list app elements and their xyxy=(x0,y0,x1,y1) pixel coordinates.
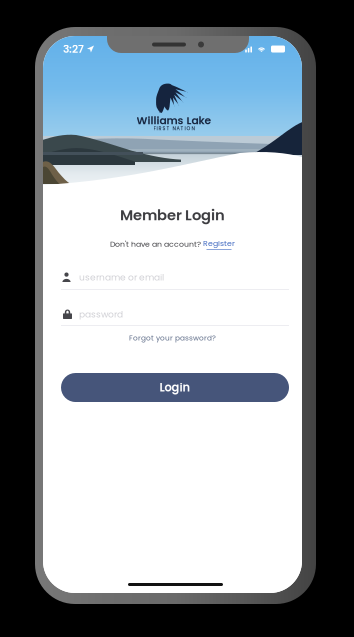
staticText: Don't have an account? xyxy=(110,239,203,249)
staticText: Williams Lake xyxy=(136,113,211,128)
button[interactable]: Forgot your password? xyxy=(43,333,302,343)
staticText: 3:27 xyxy=(63,41,84,56)
staticText: Register xyxy=(203,238,235,249)
staticText: username or email xyxy=(79,271,164,284)
staticText: password xyxy=(79,308,123,321)
button[interactable]: Login xyxy=(61,373,289,402)
staticText: Member Login xyxy=(120,205,225,225)
staticText: Login xyxy=(159,379,190,396)
button[interactable]: Register xyxy=(203,238,235,250)
staticText: F I R S T N A T I O N xyxy=(153,125,194,132)
staticText: Forgot your password? xyxy=(129,333,216,343)
